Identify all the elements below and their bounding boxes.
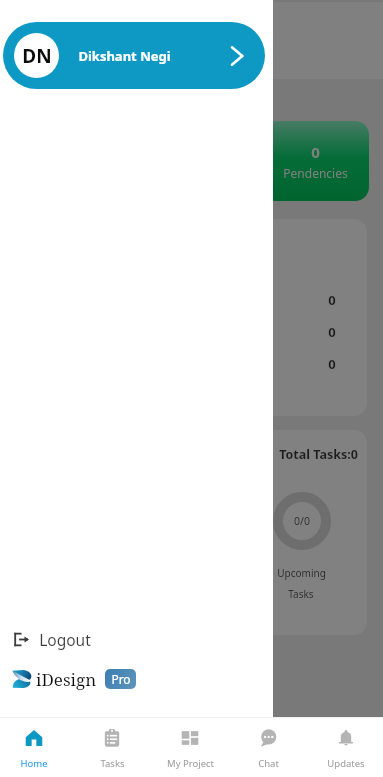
staticText: Updates	[327, 757, 365, 770]
staticText: Upcoming	[277, 566, 326, 580]
staticText: Total Tasks:0	[279, 446, 358, 463]
button[interactable]: Tasks	[73, 718, 151, 777]
staticText: 0	[328, 355, 336, 373]
button[interactable]: Updates	[307, 718, 383, 777]
staticText: DN	[22, 43, 52, 69]
staticText: Tasks	[288, 587, 314, 601]
staticText: Dikshant Negi	[78, 47, 171, 65]
staticText: iDesign	[36, 668, 97, 691]
staticText: 0	[311, 142, 320, 162]
staticText: Pendencies	[283, 165, 348, 181]
staticText: 0	[328, 323, 336, 341]
staticText: Logout	[39, 629, 91, 650]
button[interactable]: My Project	[151, 718, 229, 777]
button[interactable]: DN	[3, 22, 265, 89]
button[interactable]: Chat	[229, 718, 307, 777]
staticText: Chat	[258, 757, 279, 770]
button[interactable]: Home	[0, 718, 73, 777]
staticText: Home	[20, 757, 48, 770]
staticText: My Project	[167, 757, 214, 770]
staticText: Tasks	[100, 757, 125, 770]
staticText: Pro	[111, 671, 131, 687]
button[interactable]: 0	[262, 121, 369, 201]
staticText: 0	[328, 291, 336, 309]
staticText: 0/0	[294, 514, 310, 528]
button[interactable]: Logout	[0, 619, 273, 659]
